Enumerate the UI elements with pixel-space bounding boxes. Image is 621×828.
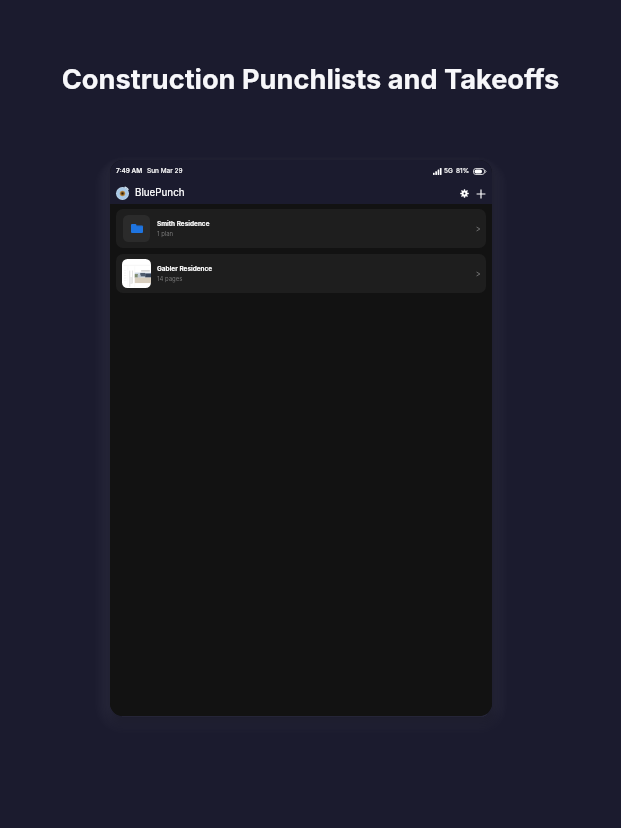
- staticText: 14 pages: [157, 275, 183, 282]
- staticText: 5G: [444, 167, 453, 175]
- staticText: Sun Mar 29: [147, 167, 183, 175]
- button[interactable]: Settings: [457, 186, 472, 201]
- button[interactable]: Smith Residence: [116, 209, 486, 248]
- button[interactable]: Gabler Residence: [116, 254, 486, 293]
- staticText: 7:49 AM: [116, 167, 143, 175]
- staticText: 81%: [456, 167, 470, 175]
- staticText: Smith Residence: [157, 220, 210, 228]
- staticText: Construction Punchlists and Takeoffs: [0, 63, 621, 96]
- staticText: 1 plan: [157, 230, 174, 237]
- staticText: Gabler Residence: [157, 265, 213, 273]
- button[interactable]: Add project: [473, 186, 488, 201]
- staticText: BluePunch: [135, 187, 185, 199]
